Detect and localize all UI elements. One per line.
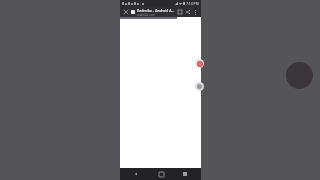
button[interactable]: Back (128, 168, 144, 180)
button[interactable]: Tabs (176, 8, 184, 16)
button[interactable]: More options (192, 9, 199, 16)
button[interactable]: Chat (195, 59, 204, 68)
button[interactable]: Close (122, 8, 130, 16)
button[interactable]: Scroll to top (195, 82, 204, 91)
staticText: redmibo.com (137, 13, 155, 17)
button[interactable]: Share (184, 8, 192, 16)
button[interactable]: Home (153, 168, 169, 180)
button[interactable]: Recents (177, 168, 193, 180)
staticText: Redmibo - Android Apps... (137, 8, 175, 13)
staticText: 7:14 PM (186, 1, 199, 6)
